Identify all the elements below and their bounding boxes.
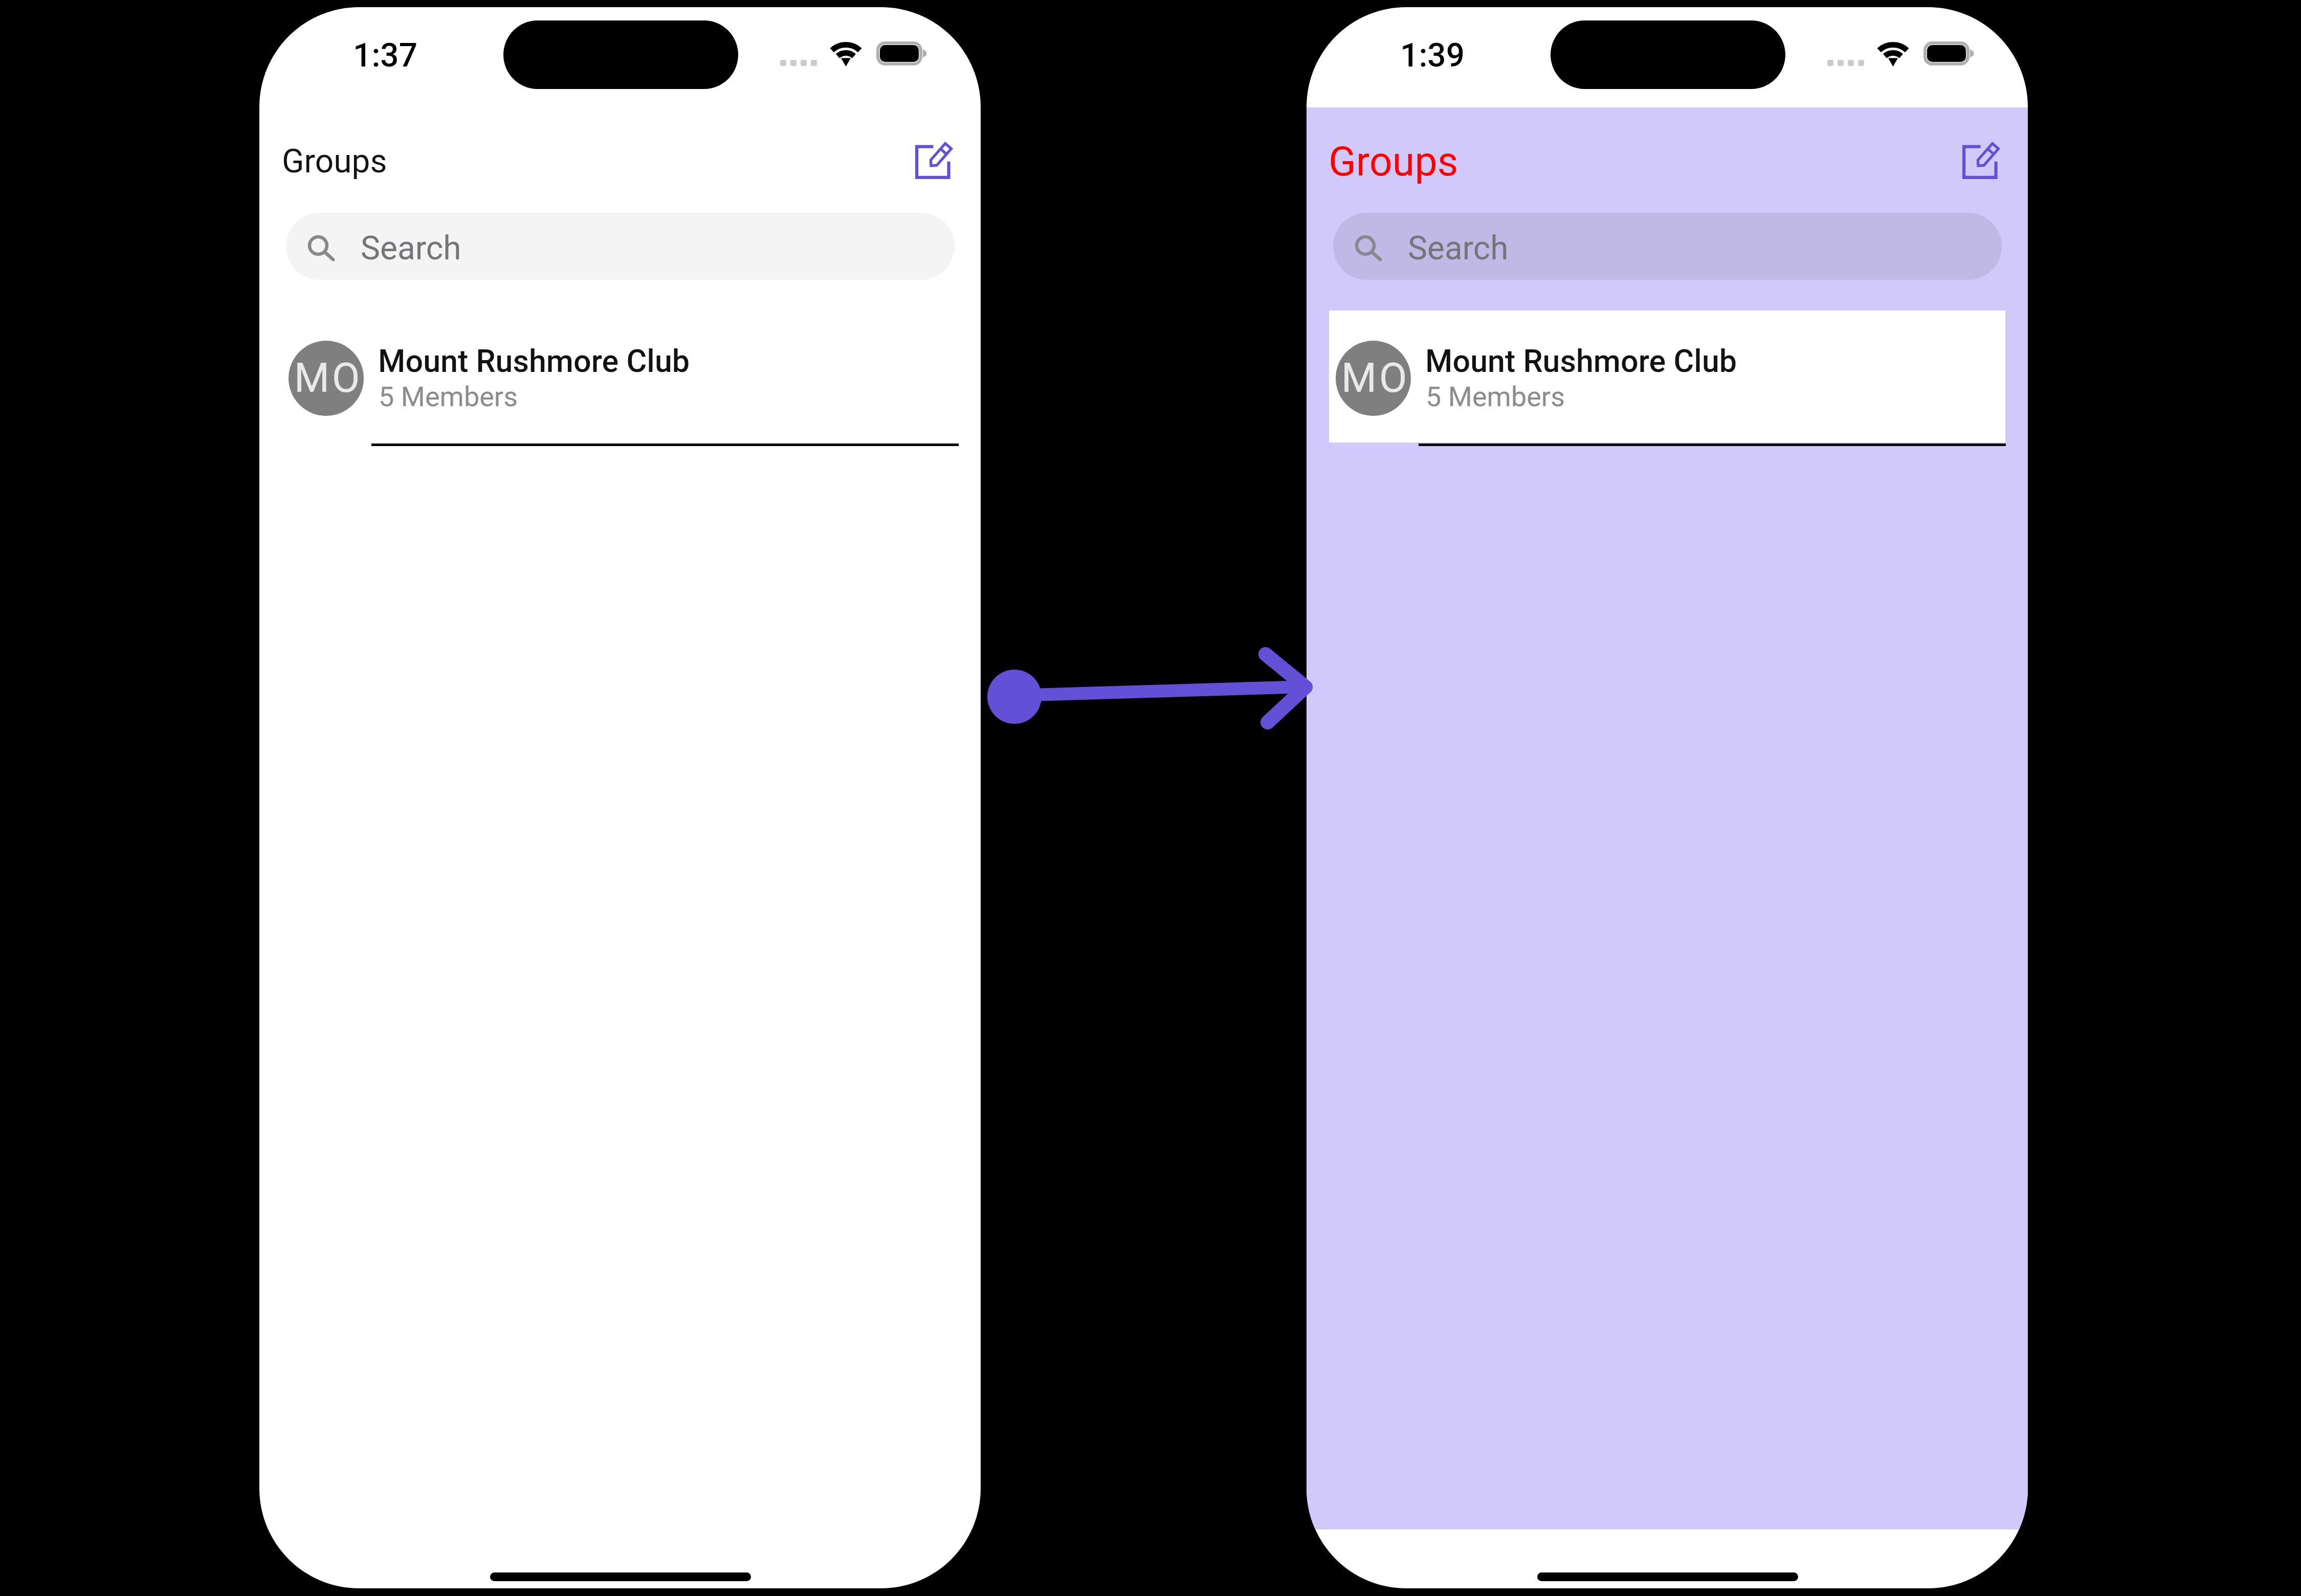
button[interactable]: Search [286,213,955,280]
staticText: MO [294,354,363,402]
staticText: Groups [282,142,387,181]
button[interactable]: MO [1307,311,2028,446]
staticText: Mount Rushmore Club [378,343,690,379]
staticText: 5 Members [379,381,518,413]
button[interactable]: Search [1333,213,2002,280]
staticText: Search [361,229,461,268]
button[interactable]: Compose new group [905,129,967,189]
staticText: 1:39 [1400,36,1465,75]
staticText: MO [1341,354,1410,402]
staticText: 5 Members [1426,381,1565,413]
staticText: Search [1408,229,1509,268]
button[interactable]: Compose new group [1952,129,2014,189]
button[interactable]: MO [259,311,981,446]
staticText: Groups [1329,138,1458,186]
staticText: 1:37 [353,36,418,75]
staticText: Mount Rushmore Club [1425,343,1737,379]
